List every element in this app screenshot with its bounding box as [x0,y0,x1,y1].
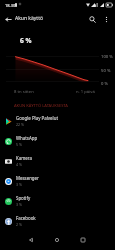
staticText: 0 % [101,81,108,87]
staticText: Spotify [16,195,31,201]
button[interactable]: Back [25,234,37,246]
button[interactable]: Kamera [0,151,115,171]
staticText: 2 % [16,222,22,227]
staticText: Messenger [16,175,39,181]
button[interactable]: Facebook [0,211,115,231]
staticText: n. 1 päivä [76,89,95,95]
staticText: 8 tn sitten [14,89,34,95]
button[interactable]: Search [86,13,98,25]
button[interactable]: WhatsApp [0,131,115,151]
staticText: 18.30 [5,3,16,8]
staticText: Akun käyttö [15,15,44,22]
button[interactable]: Messenger [0,171,115,191]
staticText: Kamera [16,155,32,161]
button[interactable]: Recent apps [77,234,89,246]
staticText: 50 % [101,68,111,74]
staticText: 6 % [20,36,32,45]
staticText: 3 % [16,202,22,207]
staticText: 100 % [101,54,113,60]
button[interactable]: Home [51,234,63,246]
staticText: WhatsApp [16,135,38,141]
staticText: Google Play Palvelut [16,115,58,121]
button[interactable]: Spotify [0,191,115,211]
button[interactable]: Google Play Palvelut [0,111,115,131]
staticText: AKUN KÄYTTÖ LATAUKSESTA [14,103,68,108]
button[interactable]: More options [100,13,112,25]
staticText: 5 % [16,142,22,147]
staticText: Facebook [16,215,36,221]
staticText: 3 % [16,182,22,187]
staticText: 22 % [16,122,25,127]
staticText: 4 % [16,162,22,167]
button[interactable]: Navigate up [2,13,14,25]
